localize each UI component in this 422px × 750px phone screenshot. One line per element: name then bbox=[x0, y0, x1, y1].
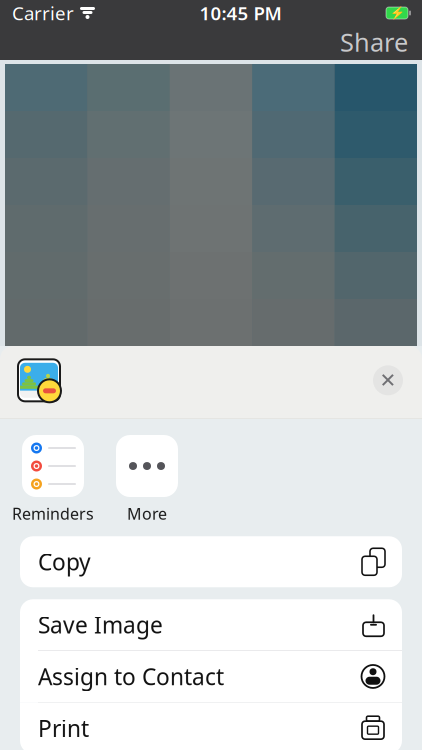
staticText: Save Image bbox=[38, 610, 163, 640]
staticText: Print bbox=[38, 713, 89, 743]
staticText: Reminders bbox=[12, 503, 94, 524]
button[interactable]: More bbox=[100, 435, 194, 524]
staticText: Copy bbox=[38, 547, 91, 577]
button[interactable]: Save Image bbox=[20, 599, 402, 651]
button[interactable]: Print bbox=[20, 703, 402, 750]
staticText: More bbox=[127, 503, 167, 524]
staticText: ⚡ bbox=[389, 6, 404, 20]
staticText: Assign to Contact bbox=[38, 661, 224, 691]
button[interactable]: Assign to Contact bbox=[20, 651, 402, 703]
staticText: ✕ bbox=[379, 369, 396, 392]
button[interactable]: Reminders bbox=[6, 435, 100, 524]
staticText: Carrier bbox=[12, 1, 74, 25]
button[interactable]: Share bbox=[326, 19, 422, 65]
staticText: 10:45 PM bbox=[199, 1, 281, 25]
staticText: Share bbox=[340, 25, 408, 59]
button[interactable]: Close bbox=[368, 360, 408, 400]
button[interactable]: Copy bbox=[20, 536, 402, 587]
